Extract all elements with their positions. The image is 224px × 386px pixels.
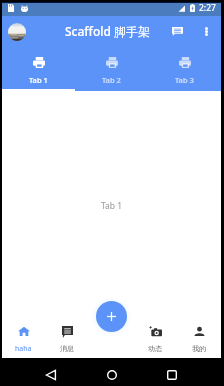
- staticText: 动态: [148, 344, 162, 353]
- staticText: 消息: [60, 344, 74, 353]
- button[interactable]: Tab 3: [148, 47, 221, 91]
- staticText: 2:27: [199, 2, 216, 14]
- button[interactable]: 我的: [177, 318, 221, 358]
- button[interactable]: haha: [2, 318, 45, 358]
- button[interactable]: 消息: [45, 318, 89, 358]
- button[interactable]: Back: [40, 364, 62, 386]
- button[interactable]: More options: [196, 21, 217, 42]
- staticText: Tab 2: [102, 75, 121, 85]
- staticText: Tab 1: [29, 75, 48, 85]
- staticText: haha: [15, 344, 32, 354]
- button[interactable]: Add: [96, 301, 127, 332]
- button[interactable]: Profile: [8, 23, 26, 41]
- button[interactable]: Tab 1: [2, 47, 75, 91]
- button[interactable]: Home: [101, 364, 123, 386]
- staticText: 我的: [192, 344, 206, 353]
- staticText: Tab 3: [175, 75, 194, 85]
- button[interactable]: Recents: [161, 364, 183, 386]
- button[interactable]: 动态: [133, 318, 177, 358]
- staticText: Tab 1: [101, 200, 123, 212]
- button[interactable]: Tab 2: [75, 47, 148, 91]
- button[interactable]: Messages: [166, 20, 188, 42]
- staticText: Scaffold 脚手架: [65, 23, 151, 39]
